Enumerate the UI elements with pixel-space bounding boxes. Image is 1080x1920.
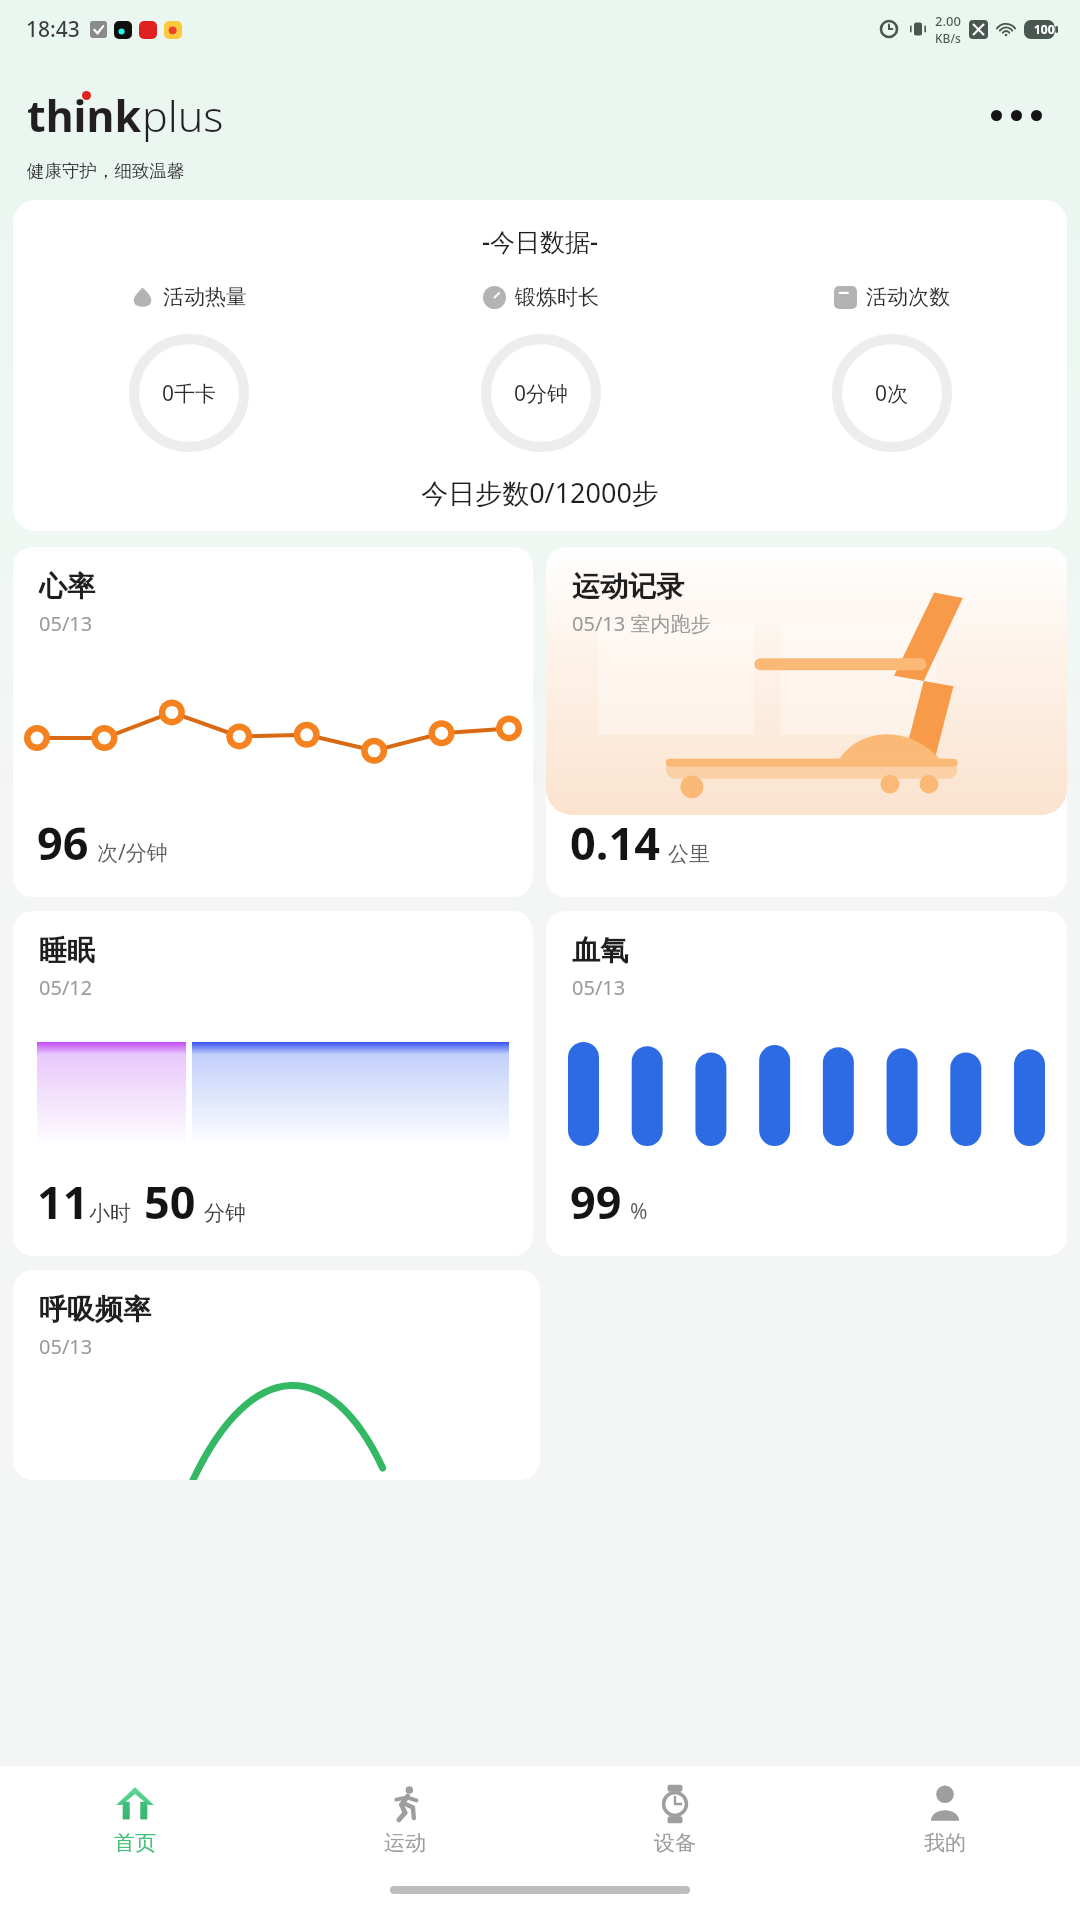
staticText: 锻炼时长 (515, 284, 599, 310)
staticText: plus (142, 86, 224, 145)
staticText: 分钟 (204, 1200, 246, 1226)
staticText: 0千卡 (162, 379, 217, 408)
staticText: KB/s (935, 30, 961, 46)
button[interactable]: 运动记录 (546, 547, 1067, 897)
staticText: 首页 (114, 1830, 156, 1856)
staticText: think (27, 86, 142, 145)
staticText: 100 (1034, 21, 1055, 37)
staticText: 运动 (384, 1830, 426, 1856)
button[interactable]: 心率 (13, 547, 533, 897)
staticText: 05/13 (572, 974, 626, 1001)
staticText: 0分钟 (514, 379, 569, 408)
button[interactable]: 我的 (810, 1766, 1080, 1886)
button[interactable]: 首页 (0, 1766, 270, 1886)
staticText: % (630, 1197, 648, 1226)
staticText: 05/13 (39, 610, 93, 637)
staticText: 运动记录 (572, 569, 684, 604)
button[interactable]: 运动 (270, 1766, 540, 1886)
button[interactable]: 呼吸频率 (13, 1270, 540, 1480)
button[interactable]: 设备 (540, 1766, 810, 1886)
staticText: 今日步数0/12000步 (13, 474, 1067, 511)
button[interactable]: -今日数据- (13, 200, 1067, 531)
staticText: 0.14 (570, 812, 660, 873)
staticText: 活动次数 (866, 284, 950, 310)
staticText: 健康守护，细致温馨 (27, 160, 185, 182)
staticText: 我的 (924, 1830, 966, 1856)
staticText: 05/13 室内跑步 (572, 610, 711, 637)
staticText: 心率 (39, 569, 95, 604)
button[interactable]: More options (981, 94, 1052, 137)
staticText: 0次 (875, 379, 909, 408)
staticText: 2.00 (935, 12, 961, 30)
staticText: 小时 (89, 1200, 131, 1226)
staticText: 睡眠 (39, 933, 95, 968)
staticText: 05/13 (39, 1333, 93, 1360)
button[interactable]: 血氧 (546, 911, 1067, 1256)
staticText: 血氧 (572, 933, 628, 968)
staticText: 设备 (654, 1830, 696, 1856)
staticText: -今日数据- (13, 224, 1067, 258)
staticText: 次/分钟 (97, 838, 168, 867)
staticText: 18:43 (26, 15, 80, 44)
staticText: 公里 (668, 841, 710, 867)
staticText: 活动热量 (163, 284, 247, 310)
staticText: 11 (37, 1171, 89, 1232)
button[interactable]: 睡眠 (13, 911, 533, 1256)
staticText: 50 (144, 1171, 196, 1232)
staticText: 05/12 (39, 974, 93, 1001)
staticText: 96 (37, 812, 89, 873)
staticText: 99 (570, 1171, 622, 1232)
staticText: 呼吸频率 (39, 1292, 151, 1327)
